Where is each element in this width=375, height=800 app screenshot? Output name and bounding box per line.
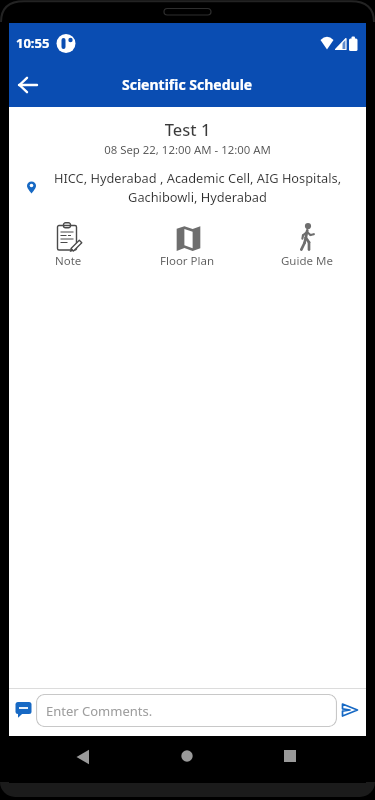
- staticText: 08 Sep 22, 12:00 AM - 12:00 AM: [9, 142, 366, 158]
- staticText: Note: [55, 253, 82, 269]
- staticText: Guide Me: [281, 253, 333, 269]
- button[interactable]: Guide Me: [247, 222, 366, 269]
- button[interactable]: Note: [9, 222, 128, 269]
- staticText: Floor Plan: [160, 253, 215, 269]
- staticText: Enter Comments.: [46, 702, 153, 720]
- button[interactable]: [61, 741, 105, 773]
- button[interactable]: Floor Plan: [128, 222, 247, 269]
- button[interactable]: [10, 696, 36, 722]
- staticText: HICC, Hyderabad , Academic Cell, AIG Hos…: [19, 169, 375, 206]
- button[interactable]: [268, 740, 312, 772]
- staticText: Scientific Schedule: [122, 75, 253, 94]
- staticText: 10:55: [16, 34, 50, 52]
- button[interactable]: Enter Comments.: [36, 694, 337, 727]
- button[interactable]: [9, 66, 47, 104]
- staticText: Test 1: [9, 118, 366, 140]
- button[interactable]: [337, 697, 363, 723]
- button[interactable]: [165, 740, 209, 772]
